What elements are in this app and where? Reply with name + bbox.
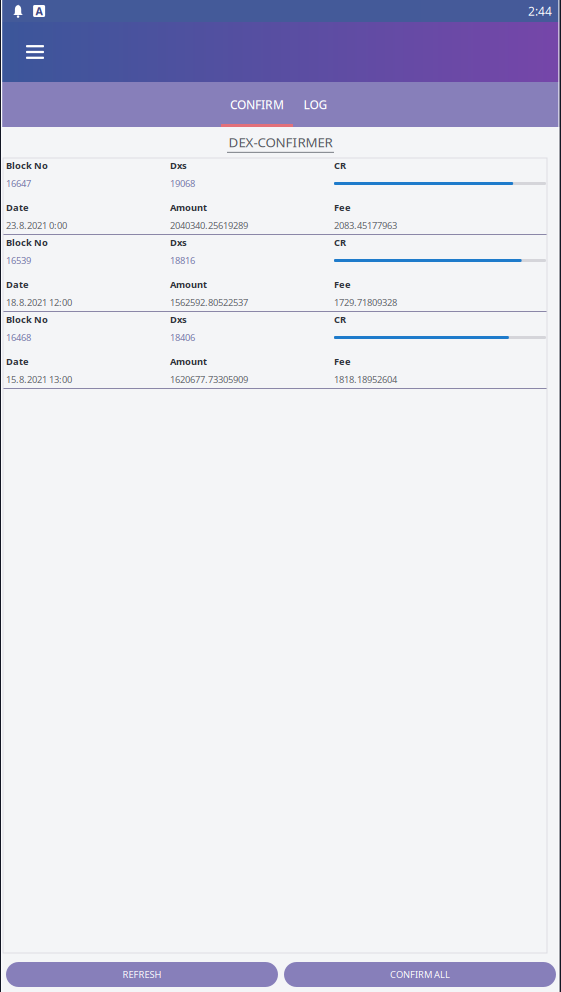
staticText: CONFIRM ALL (390, 968, 450, 981)
staticText: REFRESH (122, 968, 161, 981)
staticText: 18816 (170, 254, 195, 267)
button[interactable]: REFRESH (6, 962, 278, 987)
staticText: DEX-CONFIRMER (228, 133, 332, 151)
staticText: Dxs (170, 313, 187, 326)
staticText: 16539 (6, 254, 31, 267)
staticText: CONFIRM (230, 96, 284, 112)
staticText: Dxs (170, 236, 187, 249)
staticText: CR (334, 313, 346, 326)
staticText: Amount (170, 201, 207, 214)
staticText: 1729.71809328 (334, 296, 397, 309)
staticText: 19068 (170, 177, 195, 190)
staticText: 16468 (6, 331, 31, 344)
staticText: Fee (334, 278, 351, 291)
staticText: 15.8.2021 13:00 (6, 373, 72, 386)
button[interactable]: CONFIRM ALL (284, 962, 556, 987)
staticText: Date (6, 355, 29, 368)
staticText: Block No (6, 236, 48, 249)
staticText: 18406 (170, 331, 195, 344)
staticText: 1818.18952604 (334, 373, 397, 386)
button[interactable]: LOG (293, 82, 338, 127)
staticText: 16647 (6, 177, 31, 190)
staticText: CR (334, 159, 346, 172)
staticText: 18.8.2021 12:00 (6, 296, 72, 309)
staticText: A (36, 4, 43, 18)
staticText: 23.8.2021 0:00 (6, 219, 67, 232)
staticText: CR (334, 236, 346, 249)
staticText: 2083.45177963 (334, 219, 397, 232)
staticText: Amount (170, 278, 207, 291)
button[interactable]: DEX-CONFIRMER (227, 134, 334, 152)
staticText: Date (6, 278, 29, 291)
staticText: Block No (6, 159, 48, 172)
staticText: 2040340.25619289 (170, 219, 248, 232)
staticText: 1620677.73305909 (170, 373, 248, 386)
staticText: 2:44 (528, 3, 552, 19)
button[interactable]: Menu (13, 30, 57, 74)
button[interactable]: CONFIRM (221, 82, 293, 127)
staticText: LOG (303, 96, 327, 112)
staticText: Dxs (170, 159, 187, 172)
staticText: 1562592.80522537 (170, 296, 248, 309)
staticText: Date (6, 201, 29, 214)
staticText: Fee (334, 201, 351, 214)
staticText: Fee (334, 355, 351, 368)
staticText: Amount (170, 355, 207, 368)
staticText: Block No (6, 313, 48, 326)
